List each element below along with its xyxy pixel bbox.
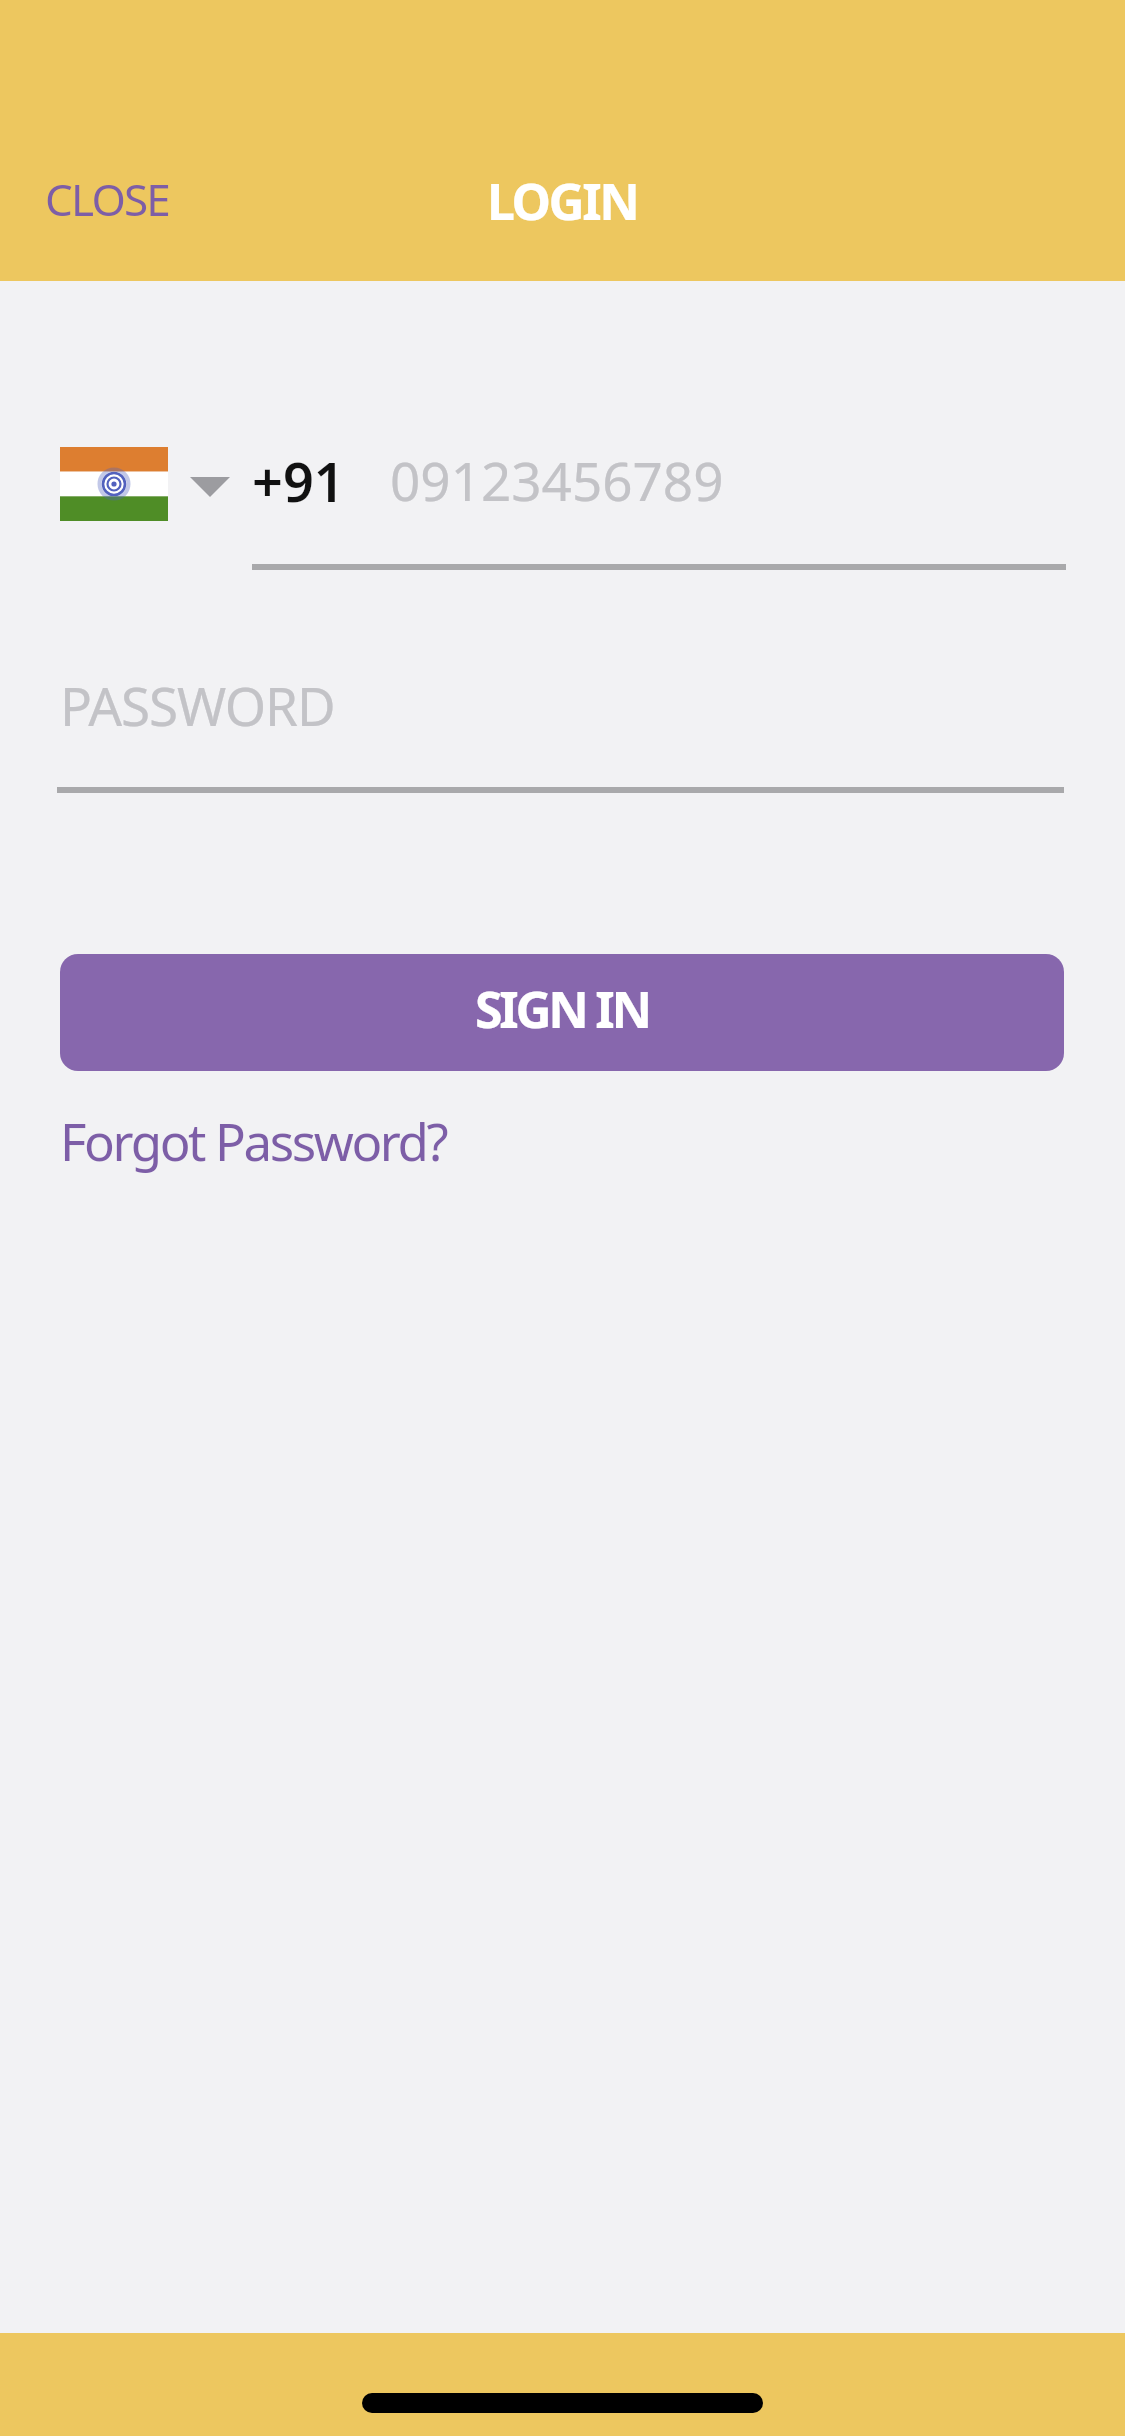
staticText: SIGN IN (475, 975, 649, 1043)
staticText: +91 (252, 444, 345, 518)
button[interactable]: Forgot Password? (60, 1106, 447, 1175)
staticText: CLOSE (45, 169, 169, 229)
staticText: 09123456789 (390, 444, 724, 516)
staticText: LOGIN (487, 167, 638, 235)
staticText: Forgot Password? (60, 1106, 447, 1175)
button[interactable]: CLOSE (45, 169, 169, 229)
staticText: PASSWORD (60, 669, 335, 741)
button[interactable]: SIGN IN (60, 954, 1064, 1071)
